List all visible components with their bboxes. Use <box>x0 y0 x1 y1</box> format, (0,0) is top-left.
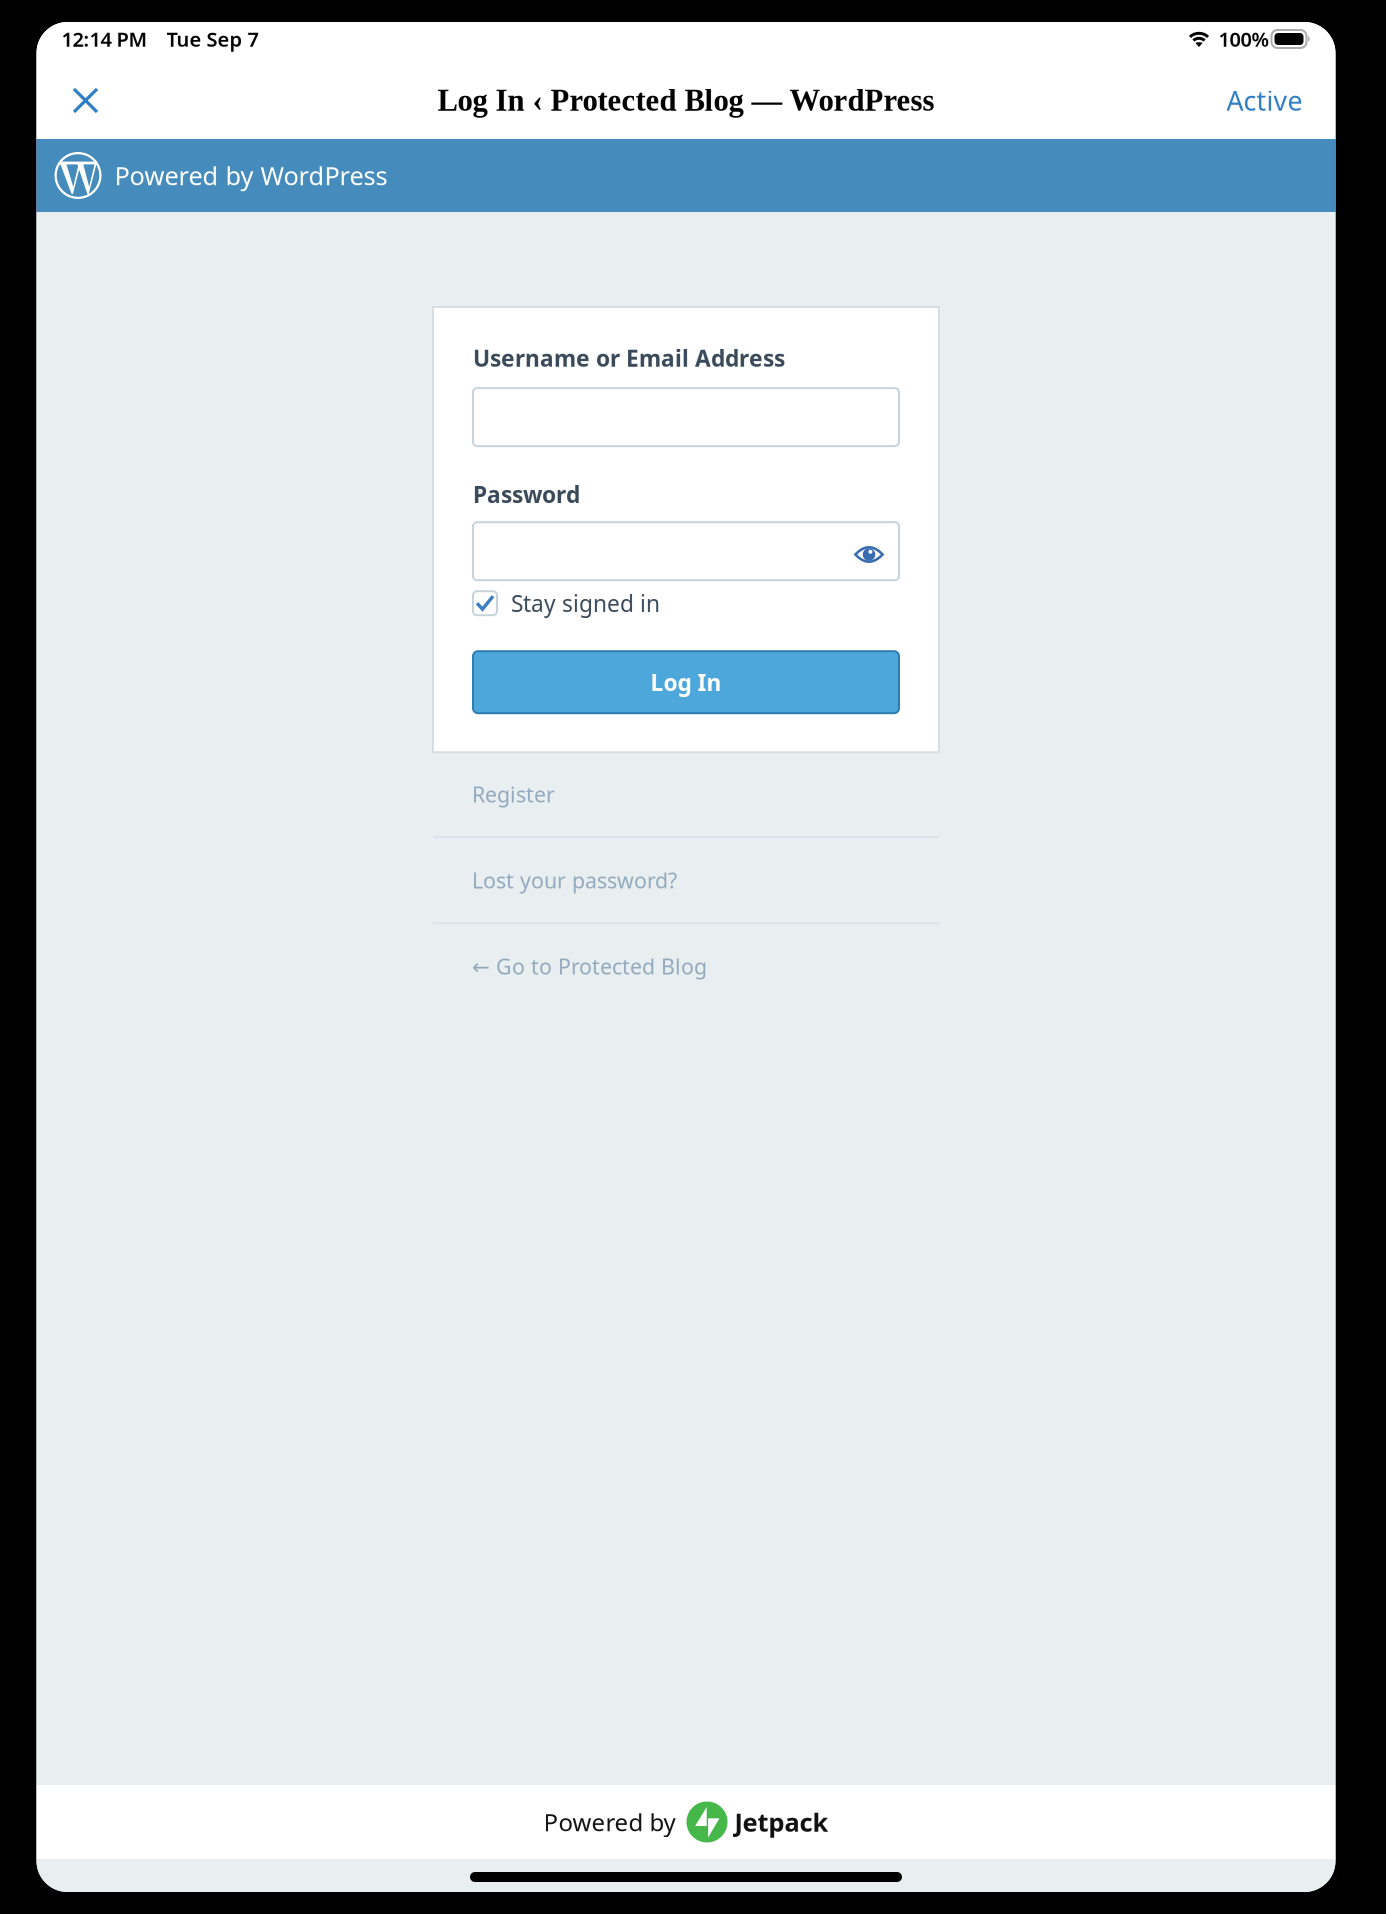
button[interactable]: Lost your password? <box>433 838 939 922</box>
staticText: Powered by <box>543 1806 675 1838</box>
staticText: ← Go to Protected Blog <box>472 952 707 980</box>
staticText: Log In ‹ Protected Blog — WordPress <box>437 83 934 117</box>
button[interactable]: ← Go to Protected Blog <box>433 924 939 1008</box>
staticText: Stay signed in <box>511 588 660 618</box>
staticText: Password <box>473 479 580 509</box>
staticText: Active <box>1226 83 1302 118</box>
button[interactable]: Active <box>1218 71 1310 130</box>
staticText: 100% <box>1218 26 1269 52</box>
staticText: Tue Sep 7 <box>166 26 258 52</box>
button[interactable]: Stay signed in <box>473 590 660 616</box>
staticText: 12:14 PM <box>61 26 147 52</box>
button[interactable]: Close <box>60 75 110 125</box>
staticText: Log In <box>650 667 721 697</box>
staticText: Jetpack <box>734 1805 828 1839</box>
button[interactable]: Register <box>433 752 939 836</box>
staticText: Register <box>472 780 555 808</box>
staticText: Username or Email Address <box>473 343 785 373</box>
button[interactable]: Log In <box>473 651 899 713</box>
staticText: Powered by WordPress <box>114 159 387 192</box>
staticText: Lost your password? <box>472 866 677 894</box>
